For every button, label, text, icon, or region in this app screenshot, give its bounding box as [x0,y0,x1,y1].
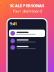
button[interactable] [8,37,46,44]
staticText: 9:41 [10,21,17,26]
button[interactable] [9,30,45,37]
staticText: Your dashboard [12,8,41,14]
button[interactable] [8,44,46,51]
staticText: SCALE PERSONAS [10,3,44,8]
